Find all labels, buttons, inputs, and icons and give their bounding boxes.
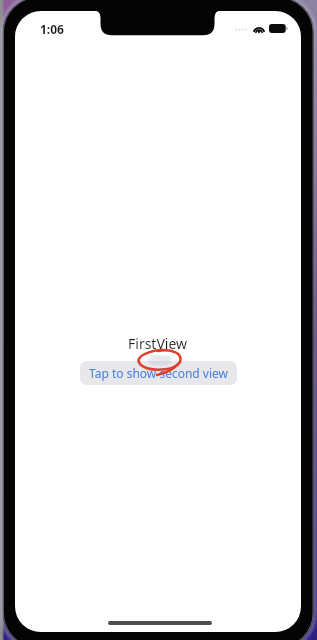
button[interactable]: Tap to show second view <box>80 361 237 385</box>
staticText: FirstView <box>128 334 188 353</box>
staticText: Tap to show second view <box>89 365 228 381</box>
staticText: 1:06 <box>40 21 64 35</box>
